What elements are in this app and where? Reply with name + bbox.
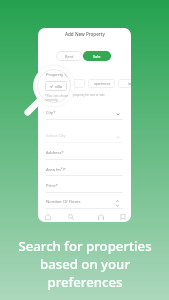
button[interactable]: Select City [46,133,120,141]
staticText: Add New Property [65,31,105,37]
button[interactable]: apartment [88,79,115,88]
button[interactable]: City* [46,110,120,118]
staticText: Rent [65,54,74,59]
button[interactable]: Area (m²)* [46,167,120,175]
staticText: Price* [46,183,58,189]
button[interactable]: land [118,79,131,88]
button[interactable]: villa [45,81,67,91]
staticText: apartment [94,82,110,86]
button[interactable]: Rent [56,51,83,61]
button[interactable]: Profile [95,211,106,222]
button[interactable]: Number Of Floors [46,199,120,207]
staticText: Property Type [46,72,71,78]
staticText: villa [69,82,75,86]
button[interactable]: Address* [46,150,120,158]
staticText: land [128,82,131,86]
staticText: Sale [93,54,101,59]
staticText: villa [55,84,62,89]
staticText: City* [46,110,56,116]
staticText: Search for properties based on your pref… [18,237,152,291]
staticText: Number Of Floors [46,199,81,205]
button[interactable]: Home [42,211,53,222]
button[interactable]: Saved [117,211,128,222]
button[interactable]: Sale [83,51,111,61]
button[interactable]: villa [59,79,85,88]
staticText: *You can choose any property [45,94,71,102]
staticText: Select City [46,133,66,139]
staticText: Area (m²)* [46,167,66,173]
staticText: Address* [46,150,64,156]
button[interactable]: Search [65,211,76,222]
button[interactable]: Price* [46,183,120,191]
staticText: *You can choose any property for rent or… [45,93,105,97]
staticText: Property Type [46,69,69,74]
